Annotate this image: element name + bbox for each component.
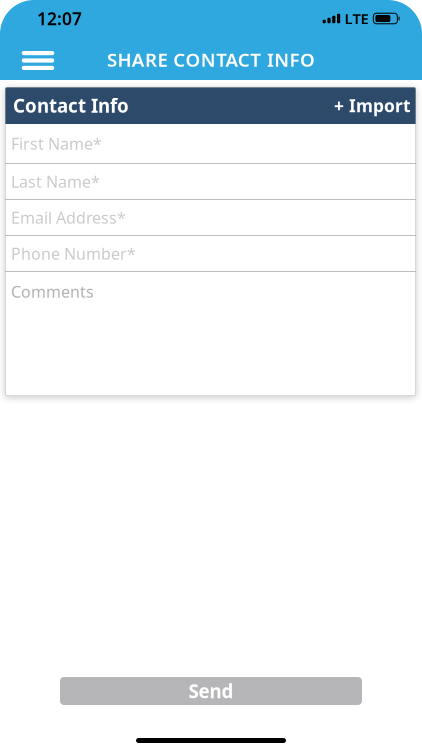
staticText: + Import <box>334 94 411 117</box>
staticText: Phone Number* <box>11 243 136 264</box>
button[interactable]: Phone Number* <box>5 236 416 271</box>
staticText: Contact Info <box>13 93 129 118</box>
button[interactable]: Last Name* <box>5 164 416 199</box>
button[interactable]: Send <box>60 677 362 705</box>
staticText: LTE <box>344 9 368 28</box>
staticText: First Name* <box>11 133 102 154</box>
button[interactable]: Email Address* <box>5 200 416 235</box>
staticText: Last Name* <box>11 171 100 192</box>
button[interactable]: Menu <box>16 34 60 82</box>
staticText: Email Address* <box>11 207 126 228</box>
staticText: Comments <box>11 281 94 302</box>
staticText: 12:07 <box>37 7 82 30</box>
button[interactable]: First Name* <box>5 124 416 163</box>
staticText: SHARE CONTACT INFO <box>107 47 315 72</box>
staticText: Send <box>188 679 233 703</box>
button[interactable]: + Import <box>320 87 416 124</box>
